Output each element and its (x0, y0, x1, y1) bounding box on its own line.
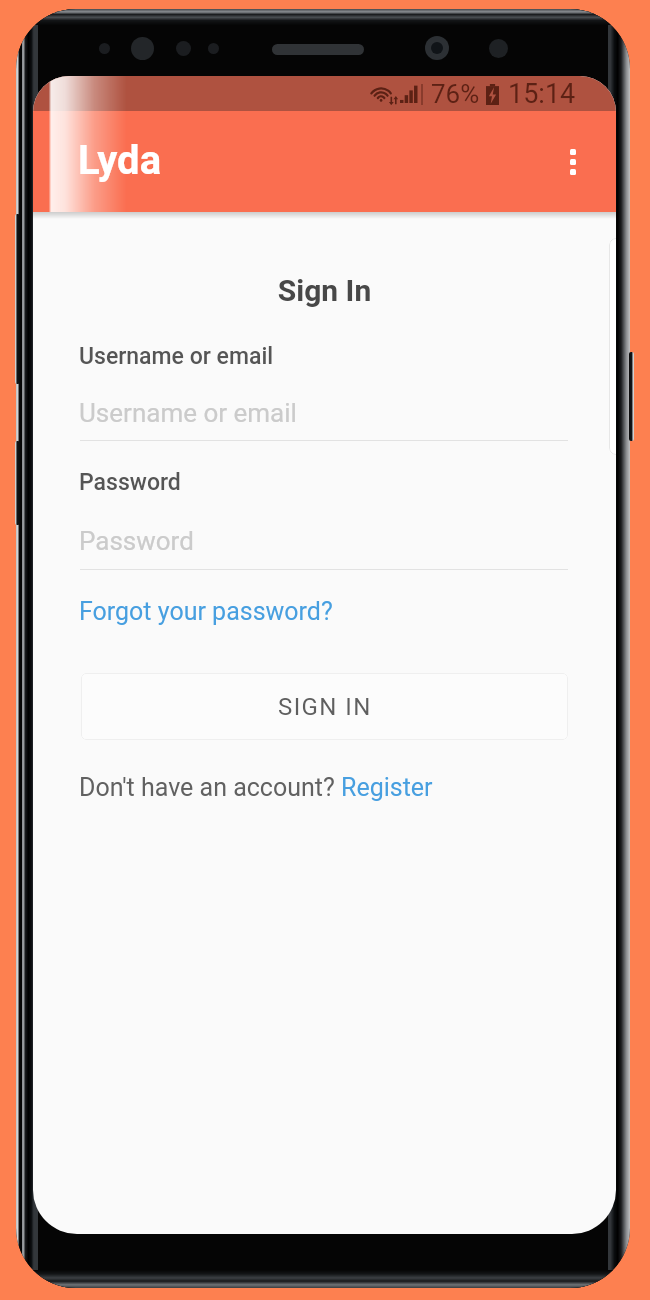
staticText: Don't have an account? (79, 773, 341, 802)
staticText: 15:14 (508, 78, 576, 110)
button[interactable]: Register (341, 773, 433, 802)
staticText: Password (79, 526, 194, 556)
staticText: Username or email (79, 343, 274, 370)
staticText: Register (341, 773, 433, 802)
button[interactable]: More options (547, 136, 599, 188)
staticText: Username or email (79, 398, 297, 428)
button[interactable]: Forgot your password? (79, 597, 333, 626)
staticText: Password (79, 469, 181, 496)
button[interactable]: SIGN IN (81, 673, 568, 740)
staticText: SIGN IN (278, 693, 372, 721)
staticText: Lyda (78, 137, 162, 184)
staticText: Sign In (33, 273, 616, 308)
staticText: 76% (431, 79, 480, 109)
